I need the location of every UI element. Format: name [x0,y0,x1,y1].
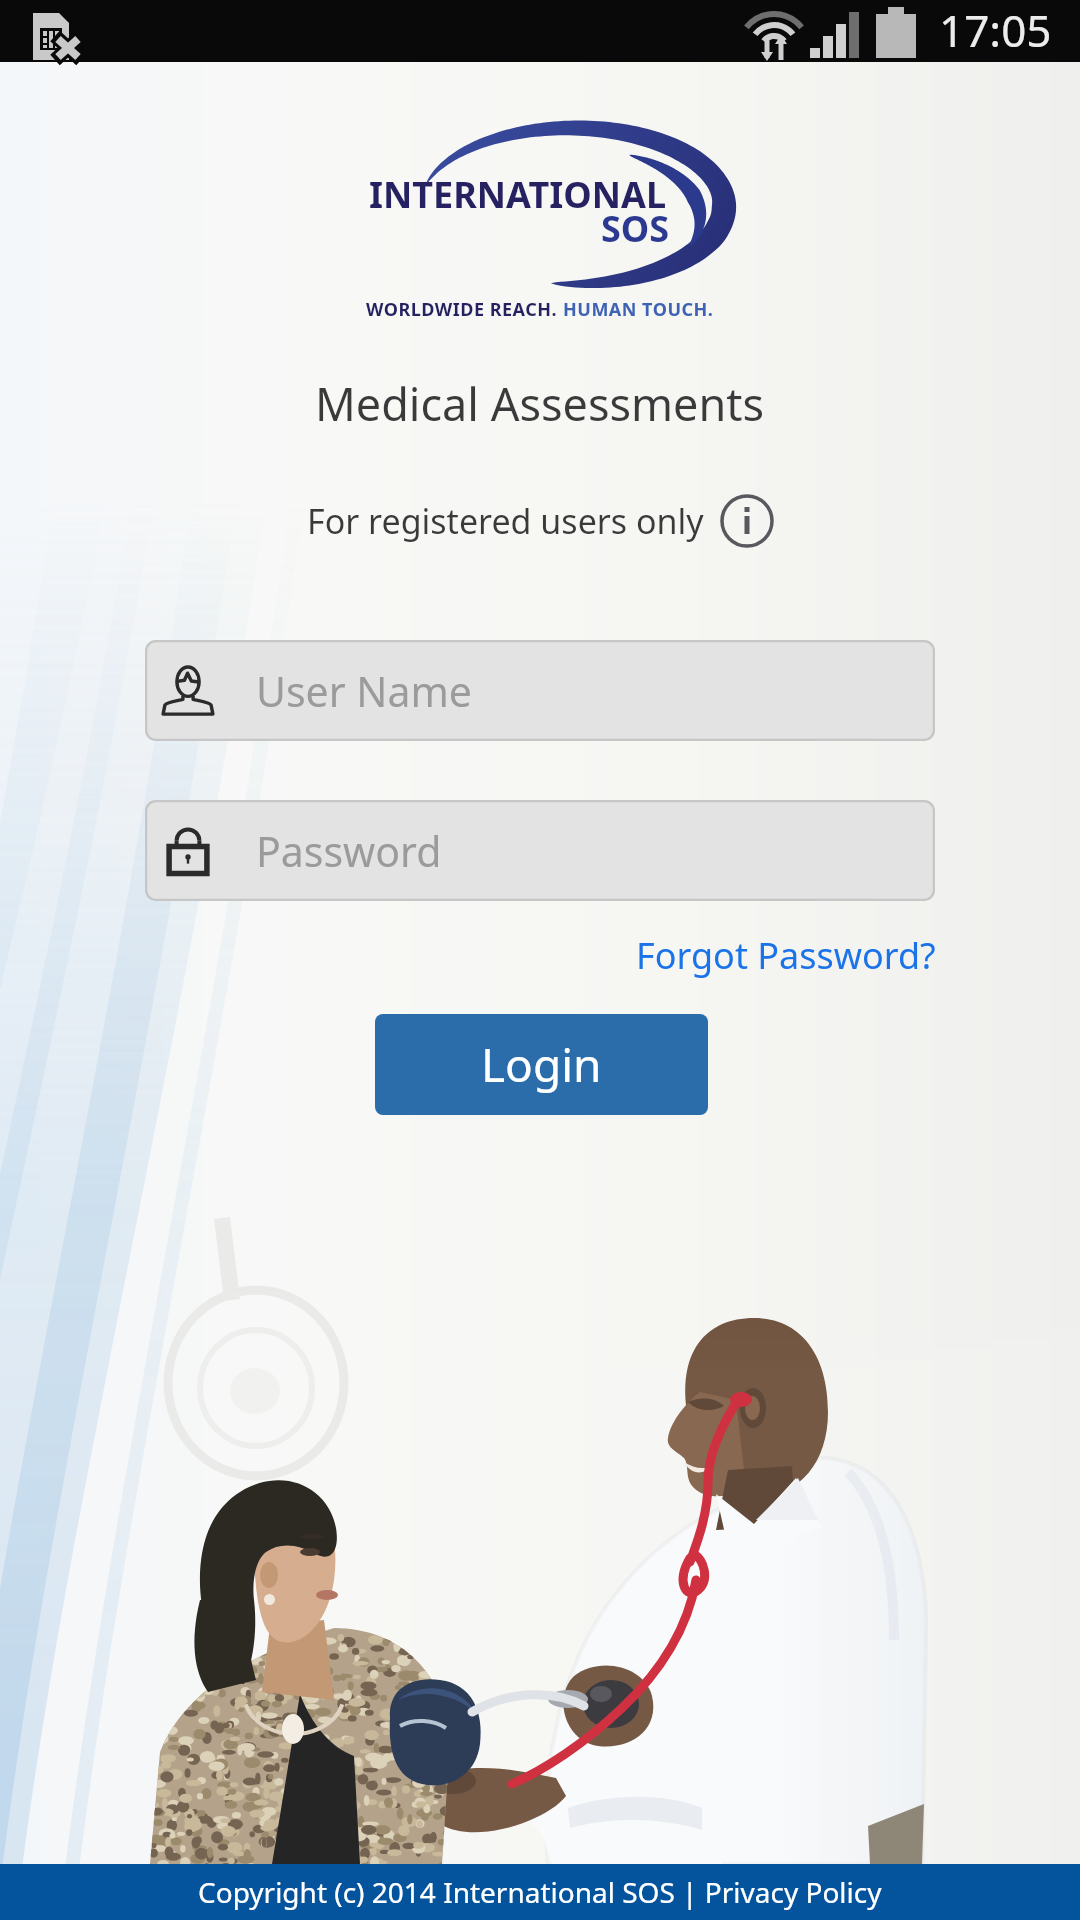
staticText: Password [256,823,442,879]
staticText: User Name [256,663,472,719]
button[interactable]: Information [720,494,774,548]
staticText: Copyright (c) 2014 International SOS | P… [198,1873,882,1911]
staticText: INTERNATIONAL [369,170,667,219]
staticText: SOS [601,204,670,253]
staticText: 17:05 [939,0,1052,60]
staticText: Forgot Password? [636,931,936,980]
button[interactable]: Forgot Password? [630,925,942,986]
button[interactable]: Login [375,1014,708,1115]
staticText: Login [481,1033,602,1096]
staticText: WORLDWIDE REACH. [366,297,563,322]
button[interactable]: Copyright (c) 2014 International SOS | P… [0,1864,1080,1920]
staticText: Medical Assessments [315,373,765,434]
button[interactable]: Password [145,800,935,901]
staticText: HUMAN TOUCH. [563,297,714,322]
staticText: For registered users only [307,498,704,544]
button[interactable]: User Name [145,640,935,741]
